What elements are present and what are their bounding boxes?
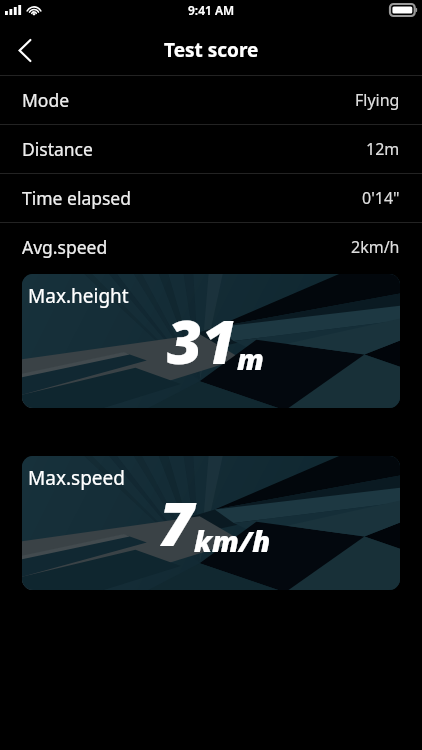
staticText: Test score <box>164 37 259 63</box>
staticText: m <box>237 339 264 378</box>
button[interactable]: Distance <box>0 125 422 173</box>
staticText: 12m <box>366 138 400 160</box>
staticText: Avg.speed <box>22 235 108 259</box>
staticText: Mode <box>22 88 70 112</box>
button[interactable]: Time elapsed <box>0 174 422 222</box>
button[interactable]: Max.speed <box>22 456 400 590</box>
staticText: 31 <box>167 300 237 382</box>
button[interactable]: Max.height <box>22 274 400 408</box>
button[interactable]: Back <box>0 29 44 73</box>
button[interactable]: Mode <box>0 76 422 124</box>
staticText: Max.speed <box>28 465 125 491</box>
button[interactable]: Avg.speed <box>0 223 422 271</box>
staticText: Max.height <box>28 283 129 309</box>
staticText: Flying <box>355 89 400 111</box>
staticText: 0'14" <box>362 187 400 209</box>
staticText: Distance <box>22 137 93 161</box>
staticText: Time elapsed <box>22 186 132 210</box>
staticText: km/h <box>194 521 271 560</box>
staticText: 9:41 AM <box>188 2 235 18</box>
staticText: 2km/h <box>351 236 400 258</box>
staticText: 7 <box>159 482 194 564</box>
